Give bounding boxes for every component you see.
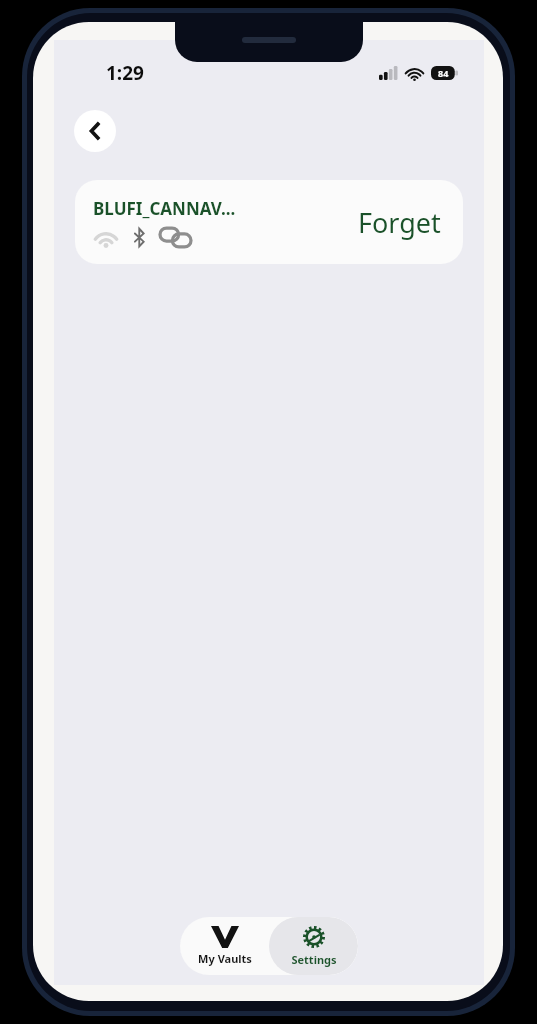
button[interactable]: BLUFI_CANNAV...: [75, 180, 463, 264]
staticText: BLUFI_CANNAV...: [93, 197, 236, 220]
button[interactable]: My Vaults: [180, 917, 269, 975]
staticText: Settings: [291, 952, 337, 967]
staticText: My Vaults: [198, 951, 252, 966]
button[interactable]: Back: [74, 110, 116, 152]
staticText: 1:29: [106, 60, 144, 86]
staticText: 84: [438, 67, 449, 79]
button[interactable]: Settings: [269, 917, 358, 975]
staticText: Forget: [358, 204, 441, 241]
